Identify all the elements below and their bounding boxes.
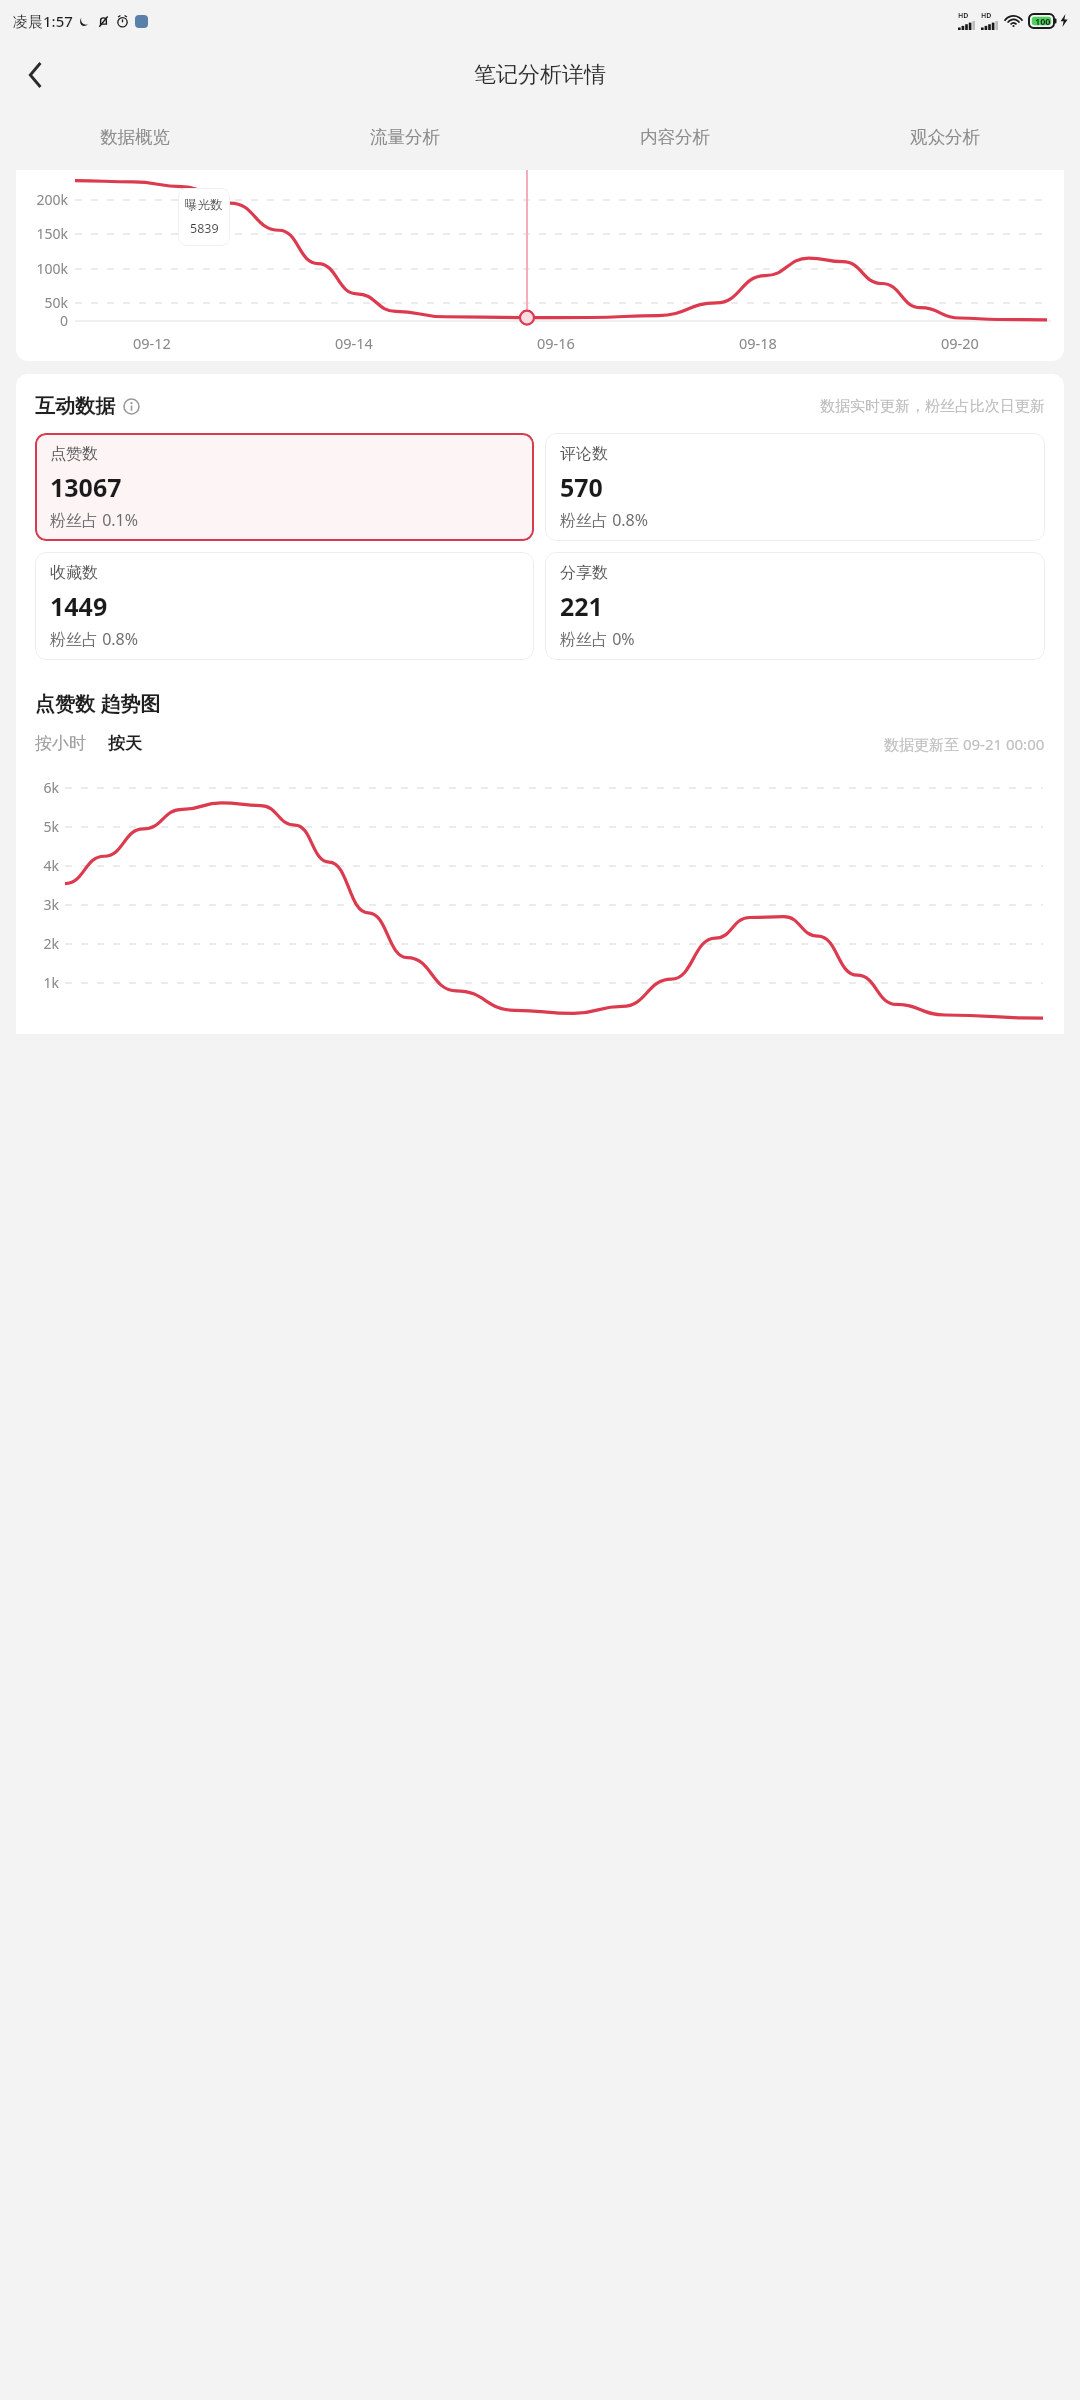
staticText: 221 (560, 589, 603, 623)
staticText: 粉丝占 0.1% (50, 509, 139, 531)
staticText: 1k (43, 973, 59, 992)
staticText: 09-12 (133, 333, 171, 353)
staticText: 50k (44, 293, 68, 312)
staticText: 点赞数 趋势图 (35, 690, 161, 717)
button[interactable]: Back (12, 52, 58, 98)
staticText: 5k (43, 817, 59, 836)
button[interactable]: 评论数 (545, 433, 1045, 541)
button[interactable]: 点赞数 (35, 433, 534, 541)
staticText: 2k (43, 934, 59, 953)
button[interactable]: 收藏数 (35, 552, 534, 660)
staticText: 粉丝占 0.8% (50, 628, 139, 650)
button[interactable]: 观众分析 (810, 109, 1080, 165)
staticText: 09-14 (335, 333, 373, 353)
staticText: 凌晨1:57 (13, 11, 73, 31)
staticText: 按小时 (35, 733, 86, 754)
staticText: 13067 (50, 470, 122, 504)
staticText: 数据概览 (100, 126, 170, 148)
staticText: 150k (36, 224, 68, 243)
staticText: 200k (36, 190, 68, 209)
staticText: 粉丝占 0.8% (560, 509, 649, 531)
button[interactable]: 按天 (108, 733, 142, 754)
staticText: 100k (36, 259, 68, 278)
button[interactable]: Info (122, 397, 141, 416)
staticText: 1449 (50, 589, 108, 623)
staticText: 分享数 (560, 563, 608, 583)
staticText: 笔记分析详情 (474, 61, 606, 89)
staticText: 5839 (190, 220, 219, 237)
staticText: HD (981, 11, 992, 21)
staticText: 09-20 (941, 333, 979, 353)
staticText: 09-16 (537, 333, 575, 353)
staticText: 互动数据 (35, 394, 115, 419)
button[interactable]: 流量分析 (270, 109, 540, 165)
staticText: 粉丝占 0% (560, 628, 635, 650)
staticText: 数据实时更新，粉丝占比次日更新 (820, 397, 1045, 416)
staticText: 内容分析 (640, 126, 710, 148)
staticText: HD (958, 11, 969, 21)
staticText: 观众分析 (910, 126, 980, 148)
staticText: 收藏数 (50, 563, 98, 583)
staticText: 100 (1035, 15, 1051, 27)
staticText: 流量分析 (370, 126, 440, 148)
staticText: 09-18 (739, 333, 777, 353)
staticText: 0 (59, 311, 68, 330)
staticText: 点赞数 (50, 444, 98, 464)
staticText: 评论数 (560, 444, 608, 464)
staticText: 曝光数 (185, 197, 223, 213)
button[interactable]: 数据概览 (0, 109, 270, 165)
button[interactable]: 内容分析 (540, 109, 810, 165)
staticText: 6k (43, 778, 59, 797)
staticText: 4k (43, 856, 59, 875)
staticText: 按天 (108, 733, 142, 754)
staticText: 570 (560, 470, 603, 504)
staticText: 3k (43, 895, 59, 914)
button[interactable]: 按小时 (35, 733, 86, 754)
staticText: 数据更新至 09-21 00:00 (884, 734, 1045, 754)
button[interactable]: 分享数 (545, 552, 1045, 660)
